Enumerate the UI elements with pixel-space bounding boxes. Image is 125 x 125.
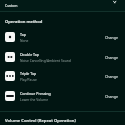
button[interactable]: Change [103,32,120,43]
staticText: Noise Cancelling/Ambient Sound [20,58,71,62]
button[interactable]: Continue Pressing [0,86,125,106]
staticText: Double Tap [20,52,40,57]
staticText: Change [105,74,118,79]
button[interactable]: Change [103,52,120,63]
staticText: Lower the Volume [20,97,49,101]
staticText: Volume Control (Repeat Operation) [5,118,76,124]
staticText: Change [105,35,118,40]
button[interactable]: Change [103,91,120,102]
staticText: Tap [20,32,26,37]
staticText: Change [105,55,118,60]
staticText: Custom [5,3,18,8]
staticText: Operation method [5,19,43,25]
staticText: None [20,38,29,42]
staticText: Triple Tap [20,71,37,76]
button[interactable]: Tap [0,27,125,47]
button[interactable]: Change [103,71,120,82]
staticText: Continue Pressing [20,91,51,96]
button[interactable]: Custom [0,0,125,12]
button[interactable]: Double Tap [0,47,125,67]
staticText: Change [105,94,118,99]
button[interactable]: Triple Tap [0,66,125,86]
staticText: Play/Pause [20,77,37,81]
button[interactable]: Expand preset [110,0,118,8]
